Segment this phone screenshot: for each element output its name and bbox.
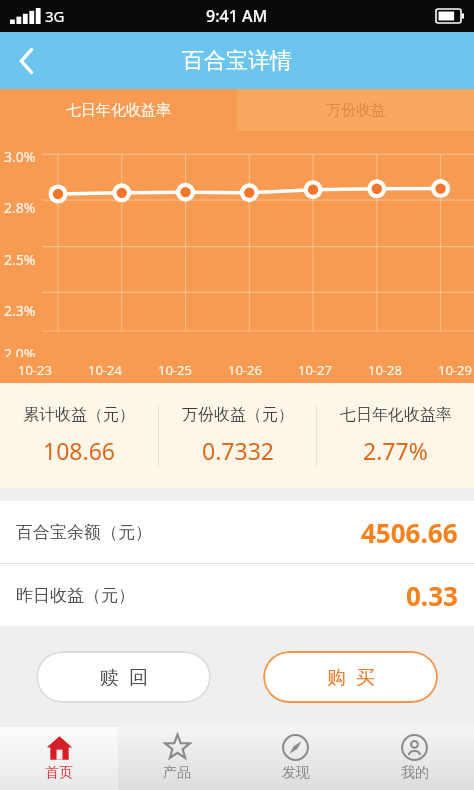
staticText: 2.77% (363, 435, 428, 466)
button[interactable]: 万份收益（元） (159, 405, 316, 466)
button[interactable]: 购 买 (263, 651, 438, 703)
staticText: 首页 (45, 764, 73, 782)
staticText: 七日年化收益率 (340, 405, 452, 425)
button[interactable]: 首页 (0, 727, 118, 790)
staticText: 七日年化收益率 (66, 101, 171, 120)
staticText: 10-26 (228, 361, 262, 379)
staticText: 赎 回 (100, 664, 148, 690)
button[interactable]: 百合宝余额（元） (0, 501, 474, 563)
button[interactable]: 产品 (118, 727, 236, 790)
staticText: 10-24 (88, 361, 122, 379)
staticText: 9:41 AM (206, 5, 268, 27)
staticText: 0.7332 (202, 435, 274, 466)
staticText: 10-25 (158, 361, 192, 379)
button[interactable]: 昨日收益（元） (0, 564, 474, 626)
staticText: 购 买 (327, 664, 375, 690)
staticText: 10-23 (18, 361, 52, 379)
staticText: 4506.66 (361, 515, 458, 550)
staticText: 万份收益 (326, 101, 386, 120)
staticText: 2.0% (4, 344, 46, 363)
staticText: 0.33 (406, 578, 458, 613)
staticText: 3.0% (4, 147, 46, 166)
staticText: 发现 (282, 764, 310, 782)
button[interactable]: 万份收益 (237, 89, 474, 131)
staticText: 昨日收益（元） (16, 585, 135, 606)
staticText: 2.8% (4, 198, 46, 217)
button[interactable]: 七日年化收益率 (0, 89, 237, 131)
staticText: 2.5% (4, 250, 46, 269)
staticText: 10-28 (368, 361, 402, 379)
staticText: 万份收益（元） (182, 405, 294, 425)
button[interactable]: 七日年化收益率 (317, 405, 474, 466)
button[interactable]: 累计收益（元） (0, 405, 158, 466)
button[interactable]: Back (0, 32, 54, 89)
button[interactable]: 赎 回 (36, 651, 211, 703)
button[interactable]: 我的 (355, 727, 474, 790)
staticText: 我的 (401, 764, 429, 782)
staticText: 10-29 (438, 361, 472, 379)
button[interactable]: 发现 (236, 727, 355, 790)
staticText: 2.3% (4, 301, 46, 320)
staticText: 百合宝详情 (182, 47, 292, 75)
staticText: 累计收益（元） (23, 405, 135, 425)
staticText: 产品 (163, 764, 191, 782)
staticText: 3G (45, 6, 65, 26)
staticText: 百合宝余额（元） (16, 522, 152, 543)
staticText: 10-27 (298, 361, 332, 379)
staticText: 108.66 (43, 435, 115, 466)
